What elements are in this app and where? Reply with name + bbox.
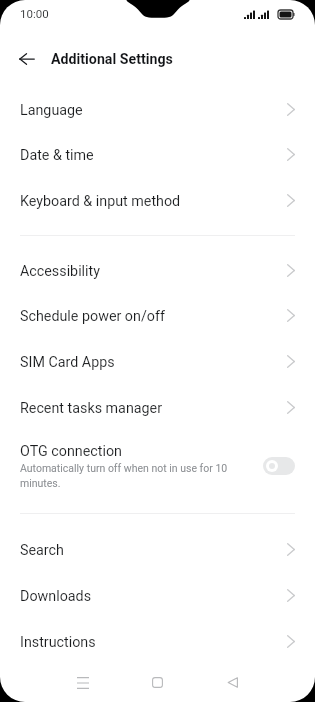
button[interactable]: Keyboard & input method <box>0 178 315 224</box>
button[interactable]: Search <box>0 527 315 573</box>
button[interactable]: Recent tasks manager <box>0 385 315 431</box>
staticText: Schedule power on/off <box>20 308 287 325</box>
button[interactable]: Home <box>136 661 179 702</box>
button[interactable]: Instructions <box>0 619 315 665</box>
button[interactable]: Downloads <box>0 573 315 619</box>
staticText: Downloads <box>20 588 287 605</box>
staticText: Date & time <box>20 147 287 164</box>
staticText: Keyboard & input method <box>20 193 287 210</box>
staticText: Automatically turn off when not in use f… <box>20 462 255 489</box>
button[interactable]: Recent apps <box>61 661 104 702</box>
staticText: Recent tasks manager <box>20 400 287 417</box>
staticText: Language <box>20 102 287 119</box>
button[interactable]: SIM Card Apps <box>0 339 315 385</box>
staticText: Additional Settings <box>51 51 173 68</box>
button[interactable]: Language <box>0 87 315 133</box>
button[interactable]: Back <box>15 47 39 71</box>
staticText: SIM Card Apps <box>20 354 287 371</box>
button[interactable]: Back <box>211 661 254 702</box>
staticText: Search <box>20 542 287 559</box>
staticText: Instructions <box>20 634 287 651</box>
staticText: Accessibility <box>20 263 287 280</box>
button[interactable]: Date & time <box>0 132 315 178</box>
staticText: 10:00 <box>20 7 49 20</box>
button[interactable]: Accessibility <box>0 248 315 294</box>
button[interactable]: OTG connection toggle <box>263 457 295 475</box>
staticText: OTG connection <box>20 443 122 460</box>
button[interactable]: Schedule power on/off <box>0 293 315 339</box>
button[interactable]: OTG connection <box>0 443 315 501</box>
